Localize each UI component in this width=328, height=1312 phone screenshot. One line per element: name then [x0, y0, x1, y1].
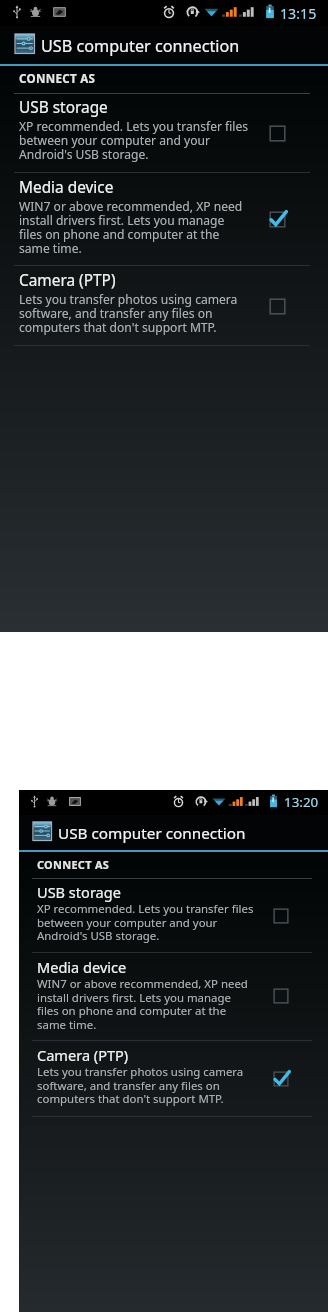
staticText: WIN7 or above recommended, XP need: [37, 976, 248, 992]
button[interactable]: USB storage: [19, 882, 328, 944]
staticText: CONNECT AS: [19, 71, 96, 87]
staticText: WIN7 or above recommended, XP need: [19, 198, 243, 214]
staticText: between your computer and your: [19, 132, 210, 148]
staticText: software, and transfer any files on: [19, 305, 213, 321]
staticText: Camera (PTP): [19, 270, 116, 291]
staticText: USB storage: [37, 882, 121, 902]
button[interactable]: Camera (PTP): [19, 1045, 328, 1107]
button[interactable]: Selected: [267, 1065, 295, 1093]
staticText: install drivers first. Lets you manage: [37, 990, 231, 1006]
button[interactable]: USB settings: [31, 820, 53, 842]
staticText: between your computer and your: [37, 915, 218, 931]
staticText: USB computer connection: [41, 35, 240, 57]
staticText: same time.: [19, 240, 82, 256]
staticText: Lets you transfer photos using camera: [19, 291, 238, 307]
staticText: 13:20: [284, 793, 319, 811]
staticText: XP recommended. Lets you transfer files: [19, 118, 249, 134]
staticText: XP recommended. Lets you transfer files: [37, 901, 254, 917]
staticText: Lets you transfer photos using camera: [37, 1064, 244, 1080]
staticText: computers that don't support MTP.: [19, 319, 217, 335]
button[interactable]: Media device: [19, 957, 328, 1033]
button[interactable]: Not selected: [262, 118, 292, 148]
staticText: Android's USB storage.: [37, 928, 160, 944]
staticText: CONNECT AS: [37, 857, 110, 872]
button[interactable]: USB storage: [0, 97, 328, 163]
button[interactable]: Not selected: [267, 982, 295, 1010]
staticText: Android's USB storage.: [19, 146, 149, 162]
staticText: files on phone and computer at the: [19, 226, 220, 242]
staticText: install drivers first. Lets you manage: [19, 212, 225, 228]
staticText: 13:15: [280, 4, 317, 23]
button[interactable]: Camera (PTP): [0, 270, 328, 336]
staticText: software, and transfer any files on: [37, 1078, 220, 1094]
button[interactable]: Not selected: [262, 291, 292, 321]
staticText: Media device: [19, 177, 114, 198]
button[interactable]: Not selected: [267, 902, 295, 930]
button[interactable]: Selected: [262, 204, 292, 234]
staticText: USB computer connection: [58, 823, 246, 844]
staticText: same time.: [37, 1017, 97, 1033]
staticText: computers that don't support MTP.: [37, 1091, 224, 1107]
staticText: files on phone and computer at the: [37, 1003, 227, 1019]
staticText: USB storage: [19, 97, 108, 118]
staticText: Camera (PTP): [37, 1045, 129, 1065]
button[interactable]: USB settings: [13, 32, 36, 55]
button[interactable]: Media device: [0, 177, 328, 257]
staticText: Media device: [37, 957, 127, 977]
